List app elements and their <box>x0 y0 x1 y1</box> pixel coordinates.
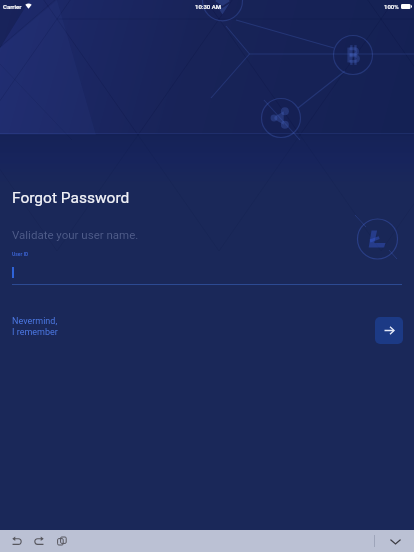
staticText: Forgot Password <box>12 189 130 207</box>
staticText: User ID <box>12 251 29 257</box>
button[interactable]: Redo <box>28 530 50 552</box>
staticText: Carrier <box>3 3 22 10</box>
staticText: Nevermind, <box>12 316 58 327</box>
button[interactable]: Nevermind, <box>12 316 58 338</box>
staticText: 100% <box>384 3 399 10</box>
staticText: 10:30 AM <box>195 3 221 10</box>
button[interactable]: Submit <box>375 317 403 344</box>
button[interactable]: Paste <box>51 530 73 552</box>
staticText: Validate your user name. <box>12 228 139 241</box>
button[interactable]: Undo <box>5 530 27 552</box>
button[interactable]: Hide keyboard <box>384 530 406 552</box>
staticText: I remember <box>12 327 58 338</box>
